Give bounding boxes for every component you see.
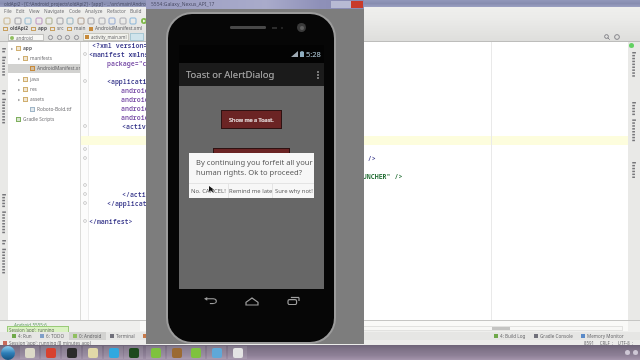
button[interactable]: Run [140, 17, 147, 24]
button[interactable]: Gradle Console [530, 332, 577, 340]
button[interactable]: Navigate [42, 8, 67, 15]
button[interactable]: Taskbar app [207, 346, 226, 359]
button[interactable]: res [8, 85, 80, 94]
button[interactable]: Roboto-Bold.ttf [8, 105, 80, 114]
button[interactable]: java [8, 75, 80, 84]
button[interactable]: Memory Monitor [577, 332, 628, 340]
button[interactable]: Taskbar app [41, 346, 60, 359]
button[interactable]: app [8, 44, 80, 53]
button[interactable]: 0: Messages [139, 332, 180, 340]
staticText: Window [188, 8, 207, 15]
button[interactable]: Refactor [105, 8, 128, 15]
staticText: AndroidManifest.xml [37, 65, 80, 72]
button[interactable]: Toolbar action [35, 17, 42, 24]
button[interactable]: Toolbar action [98, 17, 105, 24]
staticText: AndroidManifest.xml [95, 25, 143, 32]
button[interactable]: oldApi2 [3, 25, 31, 32]
button[interactable]: Toolbar action [24, 17, 31, 24]
staticText: Session 'app': running [9, 327, 55, 333]
button[interactable]: Toolbar action [56, 17, 63, 24]
button[interactable]: AndroidManifest.xml [8, 64, 80, 73]
button[interactable]: Help [614, 34, 620, 40]
button[interactable]: VCS [173, 8, 186, 15]
button[interactable]: 6: TODO [36, 332, 69, 340]
button[interactable]: Run action [73, 34, 79, 40]
button[interactable]: Help [209, 8, 224, 15]
button[interactable]: Run action [47, 34, 53, 40]
button[interactable]: Taskbar app [62, 346, 81, 359]
button[interactable]: 4: Build Log [490, 332, 530, 340]
button[interactable] [130, 33, 144, 41]
button[interactable]: Home [242, 293, 262, 309]
staticText: Code [69, 8, 81, 15]
button[interactable]: Tools [157, 8, 173, 15]
button[interactable]: Taskbar app [83, 346, 102, 359]
staticText: </activity> [122, 190, 166, 199]
staticText: Roboto-Bold.ttf [37, 106, 72, 113]
button[interactable]: File [2, 8, 14, 15]
button[interactable]: Taskbar app [228, 346, 247, 359]
button[interactable]: 0: Android [69, 332, 106, 340]
button[interactable]: src [50, 25, 67, 32]
button[interactable]: Toolbar action [45, 17, 52, 24]
button[interactable]: Build [128, 8, 144, 15]
button[interactable]: Terminal [106, 332, 139, 340]
button[interactable]: Taskbar app [20, 346, 39, 359]
button[interactable]: app [31, 25, 50, 32]
button[interactable]: Toolbar action [119, 17, 126, 24]
staticText: Android 5555:6 [14, 322, 47, 328]
staticText: Run [146, 8, 155, 15]
staticText: app [38, 25, 47, 32]
button[interactable]: Toolbar action [3, 17, 10, 24]
button[interactable]: Run action [64, 34, 70, 40]
button[interactable]: Code [67, 8, 83, 15]
button[interactable]: Toolbar action [66, 17, 73, 24]
button[interactable]: android [8, 34, 44, 41]
button[interactable]: Remind me later. [229, 184, 272, 198]
button[interactable]: Toolbar action [77, 17, 84, 24]
button[interactable]: More options [311, 63, 324, 86]
button[interactable]: Gradle Scripts [8, 115, 80, 124]
button[interactable]: Run [144, 8, 157, 15]
button[interactable]: Taskbar app [104, 346, 123, 359]
staticText: Memory Monitor [587, 333, 624, 339]
button[interactable]: Taskbar app [167, 346, 186, 359]
staticText: <category android:name="android.intent.c… [165, 172, 403, 181]
button[interactable]: Taskbar app [146, 346, 165, 359]
staticText: VCS [175, 8, 184, 15]
staticText: android:label="@string/app_name" [121, 104, 248, 113]
button[interactable]: main [67, 25, 89, 32]
staticText: android:label="@string/app_name" > [150, 136, 285, 145]
button[interactable]: 4: Run [8, 332, 36, 340]
button[interactable]: Run action [56, 34, 62, 40]
button[interactable]: Toolbar action [108, 17, 115, 24]
button[interactable]: Taskbar app [186, 346, 205, 359]
button[interactable]: Sure why not! [273, 184, 314, 198]
staticText: java [30, 76, 40, 83]
button[interactable]: No. CANCEL! [189, 184, 228, 198]
staticText: 6: TODO [46, 333, 65, 339]
button[interactable]: Recent apps [283, 293, 303, 309]
button[interactable]: Window [186, 8, 209, 15]
button[interactable]: Start [1, 346, 15, 360]
button[interactable]: Search [604, 34, 610, 40]
button[interactable]: Toolbar action [87, 17, 94, 24]
button[interactable]: Back [200, 293, 220, 309]
button[interactable]: manifests [8, 54, 80, 63]
staticText: Show me a Toast. [229, 116, 274, 123]
button[interactable]: activity_main.xml [83, 33, 129, 41]
button[interactable]: Analyze [83, 8, 105, 15]
button[interactable]: Toolbar action [129, 17, 136, 24]
button[interactable]: View [27, 8, 42, 15]
button[interactable]: Show me a Toast. [221, 110, 282, 129]
button[interactable]: Edit [14, 8, 27, 15]
button[interactable]: Taskbar app [124, 346, 143, 359]
staticText: oldApi2 [10, 25, 28, 32]
staticText: 0: Android [79, 333, 102, 339]
button[interactable]: assets [8, 95, 80, 104]
staticText: 8591 CRLF : UTF-8 : [584, 340, 634, 345]
button[interactable]: Toolbar action [14, 17, 21, 24]
staticText: Analyze [85, 8, 103, 15]
button[interactable]: Show me an AlertDialog. [213, 148, 290, 167]
